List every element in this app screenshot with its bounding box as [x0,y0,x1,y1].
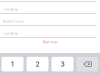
button[interactable]: 1 [1,57,23,71]
button[interactable]: Start over [30,38,70,45]
button[interactable]: Last Name [0,28,100,40]
staticText: 1 [11,60,14,68]
staticText: Middle Initial [3,20,24,23]
staticText: First Name [3,8,18,11]
staticText: 2 [35,60,39,68]
staticText: Start over [42,40,57,44]
button[interactable]: First Name [0,4,100,16]
button[interactable]: 2 [26,57,48,71]
button[interactable]: 3 [51,57,73,71]
staticText: Last Name [3,32,18,35]
button[interactable]: Delete [76,57,98,71]
staticText: 3 [60,60,64,68]
button[interactable]: Middle Initial [0,16,100,28]
